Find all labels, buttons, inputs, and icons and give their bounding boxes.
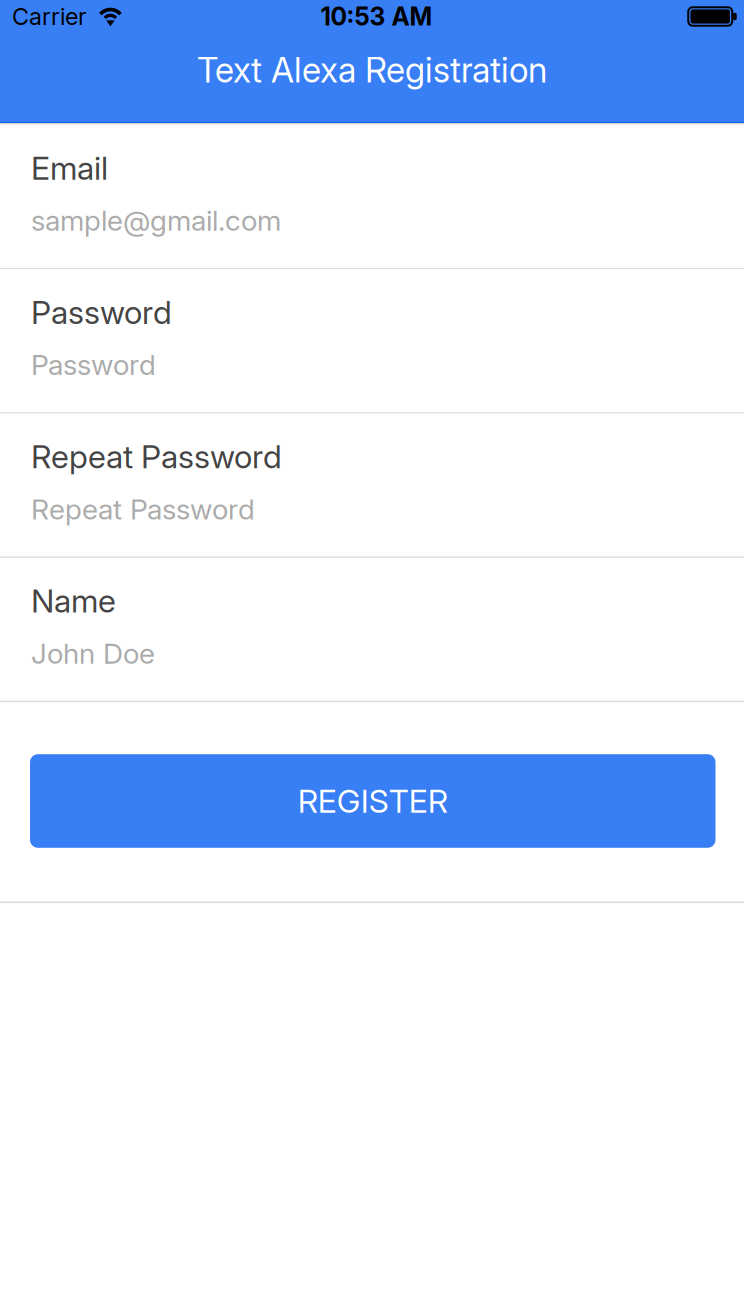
staticText: REGISTER <box>298 782 448 820</box>
button[interactable]: Email <box>0 125 744 268</box>
staticText: 10:53 AM <box>320 2 432 31</box>
button[interactable]: Repeat Password <box>0 414 744 556</box>
staticText: Password <box>31 293 172 332</box>
staticText: Text Alexa Registration <box>197 49 547 91</box>
button[interactable]: Name <box>0 558 744 701</box>
staticText: John Doe <box>31 636 155 670</box>
staticText: Repeat Password <box>31 492 255 526</box>
button[interactable]: REGISTER <box>30 754 715 848</box>
staticText: Repeat Password <box>31 437 282 476</box>
staticText: Email <box>31 149 108 187</box>
staticText: Password <box>31 348 156 382</box>
staticText: Name <box>31 581 116 620</box>
staticText: sample@gmail.com <box>31 203 281 238</box>
staticText: Carrier <box>12 2 87 31</box>
button[interactable]: Password <box>0 269 744 412</box>
